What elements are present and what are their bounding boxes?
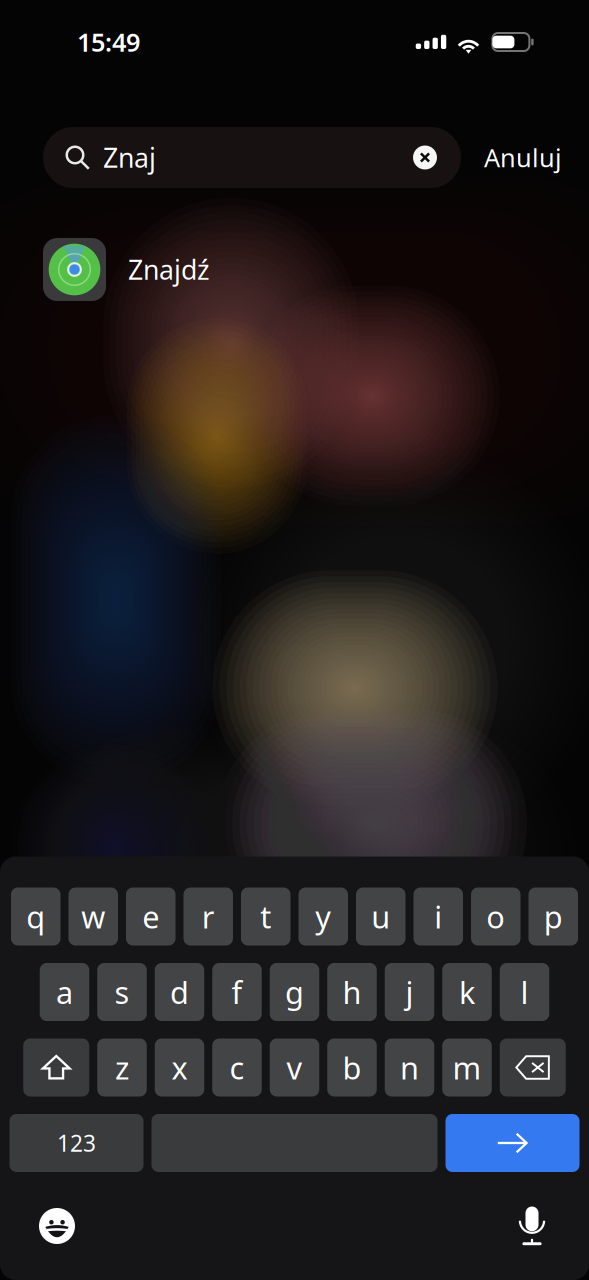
staticText: z xyxy=(115,1047,129,1088)
staticText: Znajdź xyxy=(128,252,210,287)
button[interactable]: r xyxy=(183,887,233,945)
staticText: y xyxy=(315,896,331,937)
button[interactable]: Dictate xyxy=(502,1196,562,1256)
staticText: h xyxy=(342,972,361,1012)
staticText: i xyxy=(434,896,442,937)
button[interactable]: h xyxy=(327,963,377,1021)
staticText: p xyxy=(544,896,563,937)
button[interactable]: j xyxy=(385,963,434,1021)
button[interactable]: f xyxy=(212,963,262,1021)
button[interactable]: Delete xyxy=(500,1038,566,1096)
button[interactable]: z xyxy=(97,1038,147,1096)
button[interactable]: t xyxy=(241,887,290,945)
staticText: n xyxy=(400,1047,419,1088)
button[interactable]: d xyxy=(155,963,204,1021)
staticText: 123 xyxy=(57,1128,96,1158)
button[interactable]: c xyxy=(212,1038,262,1096)
button[interactable]: s xyxy=(97,963,147,1021)
button[interactable]: Search xyxy=(445,1114,579,1172)
button[interactable]: g xyxy=(270,963,319,1021)
button[interactable]: 123 xyxy=(9,1114,143,1172)
button[interactable]: q xyxy=(11,887,60,945)
staticText: c xyxy=(229,1047,244,1088)
button[interactable]: m xyxy=(442,1038,492,1096)
button[interactable]: p xyxy=(528,887,578,945)
button[interactable]: Shift xyxy=(23,1038,89,1096)
button[interactable]: x xyxy=(155,1038,204,1096)
staticText: l xyxy=(520,972,528,1012)
staticText: g xyxy=(285,972,304,1012)
button[interactable]: a xyxy=(40,963,89,1021)
staticText: u xyxy=(371,896,390,937)
button[interactable]: i xyxy=(413,887,463,945)
button[interactable]: o xyxy=(471,887,520,945)
staticText: d xyxy=(170,972,189,1012)
staticText: j xyxy=(405,972,413,1012)
staticText: r xyxy=(202,896,215,937)
staticText: w xyxy=(81,896,105,937)
staticText: m xyxy=(452,1047,481,1088)
staticText: k xyxy=(459,972,475,1012)
button[interactable]: w xyxy=(68,887,118,945)
button[interactable]: b xyxy=(327,1038,377,1096)
staticText: x xyxy=(171,1047,187,1088)
staticText: b xyxy=(342,1047,361,1088)
staticText: q xyxy=(26,896,45,937)
button[interactable]: Anuluj xyxy=(461,127,582,188)
staticText: f xyxy=(231,972,242,1012)
button[interactable]: Emoji xyxy=(27,1196,87,1256)
staticText: Znaj xyxy=(103,140,156,175)
button[interactable]: l xyxy=(500,963,549,1021)
staticText: 15:49 xyxy=(77,25,140,59)
staticText: a xyxy=(56,972,73,1012)
button[interactable]: e xyxy=(126,887,175,945)
staticText: Anuluj xyxy=(484,141,562,174)
staticText: s xyxy=(114,972,129,1012)
staticText: e xyxy=(142,896,159,937)
button[interactable]: y xyxy=(298,887,348,945)
button[interactable]: v xyxy=(270,1038,319,1096)
staticText: o xyxy=(486,896,505,937)
button[interactable]: n xyxy=(385,1038,434,1096)
staticText: v xyxy=(286,1047,302,1088)
button[interactable]: Znajdź xyxy=(0,238,589,301)
button[interactable]: u xyxy=(356,887,405,945)
staticText: t xyxy=(260,896,271,937)
button[interactable]: k xyxy=(442,963,492,1021)
